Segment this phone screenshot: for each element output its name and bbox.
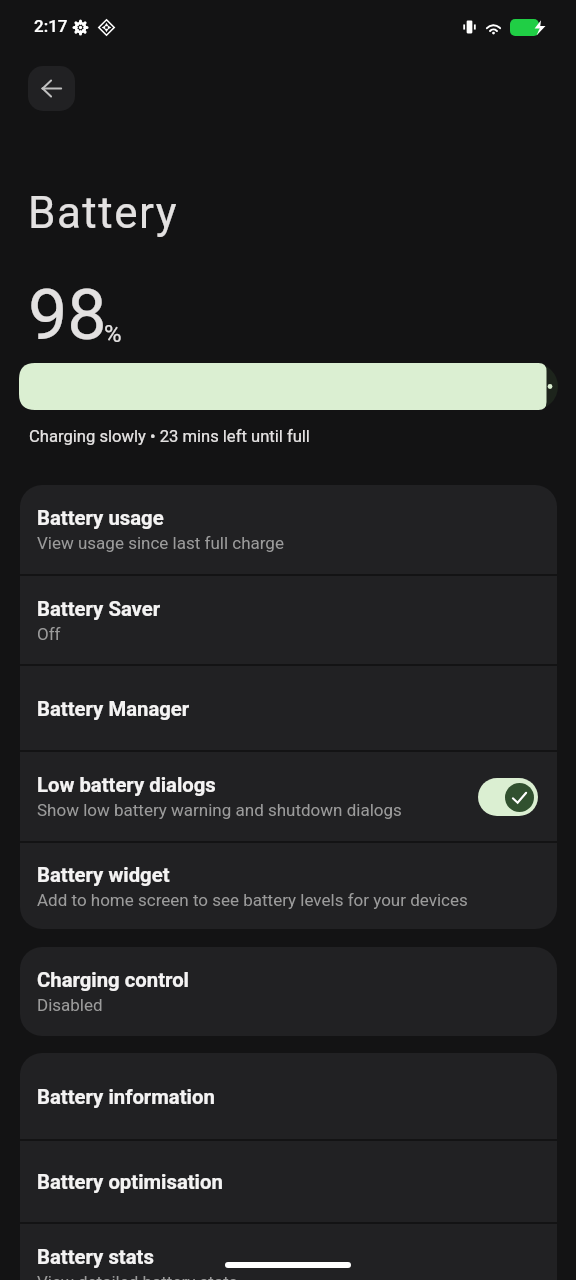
staticText: Battery widget — [37, 862, 170, 887]
button[interactable]: Battery Manager — [20, 666, 557, 750]
button[interactable]: Low battery dialogs toggle — [478, 778, 538, 816]
button[interactable]: Battery information — [20, 1053, 557, 1139]
staticText: Battery stats — [37, 1244, 154, 1269]
staticText: Show low battery warning and shutdown di… — [37, 799, 402, 821]
button[interactable]: Charging control — [20, 947, 557, 1036]
staticText: 98 — [28, 277, 107, 355]
staticText: Off — [37, 623, 61, 645]
staticText: Charging control — [37, 967, 189, 992]
staticText: Low battery dialogs — [37, 772, 216, 797]
button[interactable]: Battery widget — [20, 843, 557, 929]
button[interactable]: Battery stats — [20, 1224, 557, 1280]
button[interactable]: Battery optimisation — [20, 1141, 557, 1222]
staticText: Add to home screen to see battery levels… — [37, 889, 468, 911]
staticText: Disabled — [37, 994, 103, 1016]
staticText: Battery optimisation — [37, 1169, 223, 1194]
button[interactable]: Back — [28, 66, 75, 111]
staticText: Charging slowly • 23 mins left until ful… — [29, 425, 310, 447]
staticText: Battery Manager — [37, 696, 190, 721]
staticText: View usage since last full charge — [37, 532, 284, 554]
staticText: View detailed battery stats — [37, 1271, 238, 1280]
button[interactable]: Low battery dialogs — [20, 752, 557, 841]
staticText: Battery usage — [37, 505, 164, 530]
staticText: Battery Saver — [37, 596, 161, 621]
button[interactable]: Battery Saver — [20, 576, 557, 664]
staticText: Battery — [28, 187, 179, 239]
staticText: % — [104, 321, 122, 348]
staticText: Battery information — [37, 1084, 215, 1109]
staticText: 2:17 — [34, 16, 68, 36]
button[interactable]: Battery usage — [20, 485, 557, 574]
